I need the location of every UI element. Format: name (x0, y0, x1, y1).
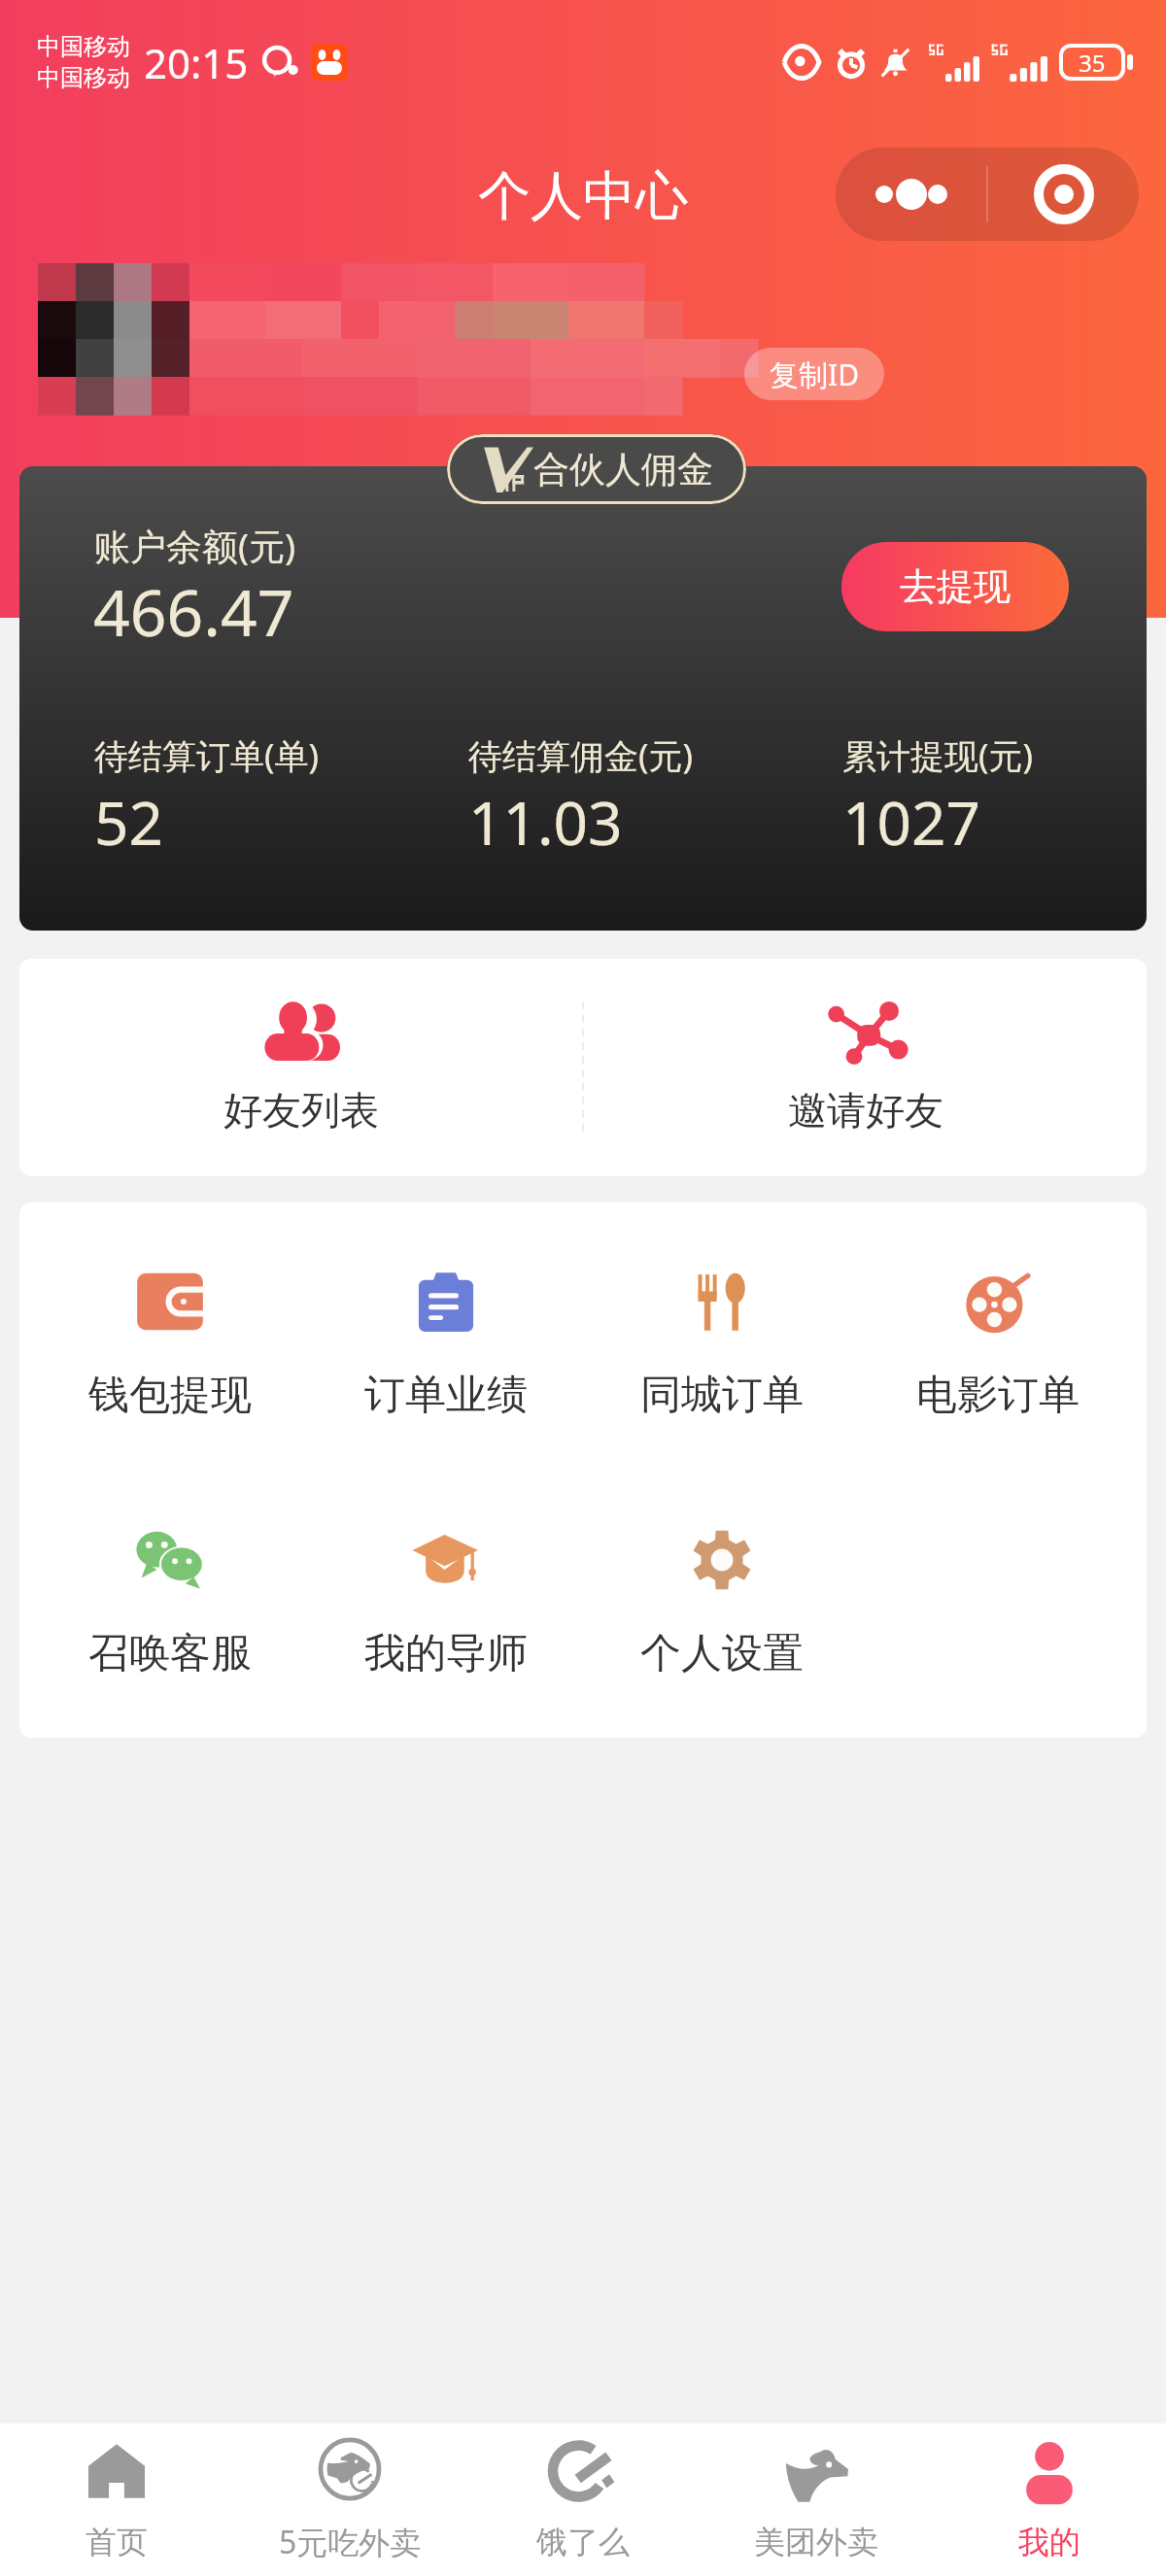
staticText: 待结算佣金(元) (468, 732, 694, 779)
staticText: 待结算订单(单) (94, 732, 320, 779)
staticText: 合伙人佣金 (533, 447, 713, 492)
staticText: 累计提现(元) (842, 732, 1034, 779)
staticText: 好友列表 (223, 1086, 379, 1135)
staticText: 35 (1079, 47, 1106, 79)
button[interactable]: 个人设置 (584, 1530, 860, 1679)
staticText: 11.03 (468, 781, 623, 863)
staticText: 我的导师 (364, 1628, 528, 1679)
button[interactable]: Close mini program (988, 148, 1139, 241)
staticText: 52 (94, 781, 163, 863)
button[interactable]: 饿了么 (466, 2423, 700, 2576)
staticText: 个人设置 (640, 1628, 804, 1679)
staticText: 饿了么 (536, 2523, 630, 2561)
button[interactable]: 去提现 (841, 542, 1069, 631)
staticText: 同城订单 (640, 1370, 804, 1421)
staticText: 首页 (86, 2523, 148, 2561)
staticText: 订单业绩 (364, 1370, 528, 1421)
button[interactable]: 我的导师 (308, 1530, 584, 1679)
staticText: 电影订单 (916, 1370, 1080, 1421)
staticText: 我的 (1018, 2523, 1080, 2561)
staticText: 中国移动 (37, 63, 130, 92)
button[interactable]: More options (836, 148, 986, 241)
button[interactable]: 召唤客服 (32, 1530, 308, 1679)
button[interactable]: 我的 (933, 2423, 1166, 2576)
staticText: 个人中心 (478, 163, 688, 229)
staticText: 1027 (842, 781, 980, 863)
button[interactable]: 钱包提现 (32, 1271, 308, 1421)
button[interactable]: 合伙人佣金 (447, 434, 746, 504)
button[interactable]: 电影订单 (860, 1271, 1136, 1421)
button[interactable]: 首页 (0, 2423, 233, 2576)
staticText: 美团外卖 (754, 2523, 878, 2561)
button[interactable]: 订单业绩 (308, 1271, 584, 1421)
button[interactable]: 5元吃外卖 (233, 2423, 466, 2576)
button[interactable]: 复制ID (744, 348, 884, 400)
staticText: 中国移动 (37, 32, 130, 61)
staticText: 召唤客服 (88, 1628, 252, 1679)
button[interactable]: 好友列表 (19, 959, 582, 1176)
button[interactable]: 邀请好友 (584, 959, 1147, 1176)
button[interactable]: 同城订单 (584, 1271, 860, 1421)
button[interactable]: 美团外卖 (700, 2423, 933, 2576)
staticText: 466.47 (93, 567, 294, 655)
staticText: 去提现 (900, 563, 1011, 610)
staticText: 钱包提现 (88, 1370, 252, 1421)
staticText: 20:15 (144, 35, 249, 90)
staticText: 账户余额(元) (94, 521, 296, 570)
staticText: 复制ID (770, 355, 860, 394)
staticText: 邀请好友 (788, 1086, 943, 1135)
staticText: 5元吃外卖 (279, 2521, 422, 2563)
